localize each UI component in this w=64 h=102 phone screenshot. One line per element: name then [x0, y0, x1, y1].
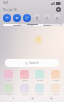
button[interactable]: App	[4, 84, 13, 95]
button[interactable]: Toggle off	[33, 14, 41, 22]
staticText: Search	[29, 61, 39, 65]
button[interactable]: Settings	[56, 7, 61, 12]
button[interactable]: App	[35, 84, 44, 95]
button[interactable]: Search	[5, 59, 59, 67]
button[interactable]: Toggle on	[13, 14, 21, 22]
button[interactable]: Slider	[33, 24, 61, 26]
button[interactable]: Back	[9, 95, 17, 102]
button[interactable]: App	[35, 70, 44, 81]
button[interactable]: Toggle off	[53, 14, 61, 22]
staticText: 9:41	[3, 1, 9, 5]
button[interactable]: Toggle on	[23, 14, 31, 22]
button[interactable]: App	[4, 70, 13, 81]
button[interactable]: App	[51, 70, 60, 81]
button[interactable]: Recents	[47, 95, 55, 102]
button[interactable]: App	[20, 84, 29, 95]
button[interactable]: Home	[28, 95, 36, 102]
button[interactable]: App	[20, 70, 29, 81]
button[interactable]: Toggle off	[43, 14, 51, 22]
button[interactable]: Toggle on	[3, 14, 11, 22]
button[interactable]: Slider	[3, 24, 31, 26]
staticText: Thu, Jan 18	[3, 8, 17, 12]
button[interactable]: App	[51, 84, 60, 95]
